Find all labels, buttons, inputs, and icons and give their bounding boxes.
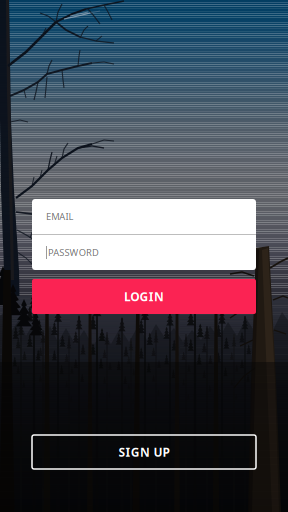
staticText: EMAIL (46, 210, 74, 223)
staticText: PASSWORD (48, 246, 99, 259)
button[interactable]: LOGIN (32, 279, 256, 314)
button[interactable]: SIGN UP (32, 435, 256, 469)
staticText: LOGIN (124, 288, 164, 304)
staticText: SIGN UP (118, 444, 170, 460)
